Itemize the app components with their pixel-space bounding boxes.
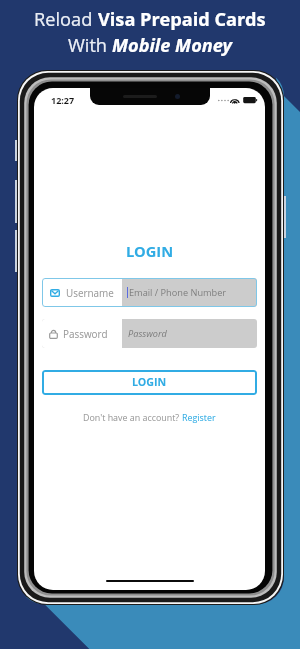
staticText: Username <box>66 286 114 299</box>
staticText: 12:27 <box>51 94 75 106</box>
staticText: Password <box>128 327 167 340</box>
button[interactable]: LOGIN <box>42 370 257 395</box>
staticText: Email / Phone Number <box>129 286 227 299</box>
staticText: LOGIN <box>132 375 167 390</box>
staticText: Reload <box>34 7 98 32</box>
staticText: Password <box>63 327 108 340</box>
button[interactable]: Register <box>182 411 216 423</box>
staticText: LOGIN <box>34 241 265 261</box>
staticText: Don't have an account? <box>83 411 182 423</box>
button[interactable]: Username <box>42 278 257 307</box>
staticText: Visa Prepaid Cards <box>98 7 266 32</box>
staticText: With <box>68 33 112 58</box>
staticText: Mobile Money <box>112 33 232 58</box>
button[interactable]: Password <box>42 319 257 348</box>
